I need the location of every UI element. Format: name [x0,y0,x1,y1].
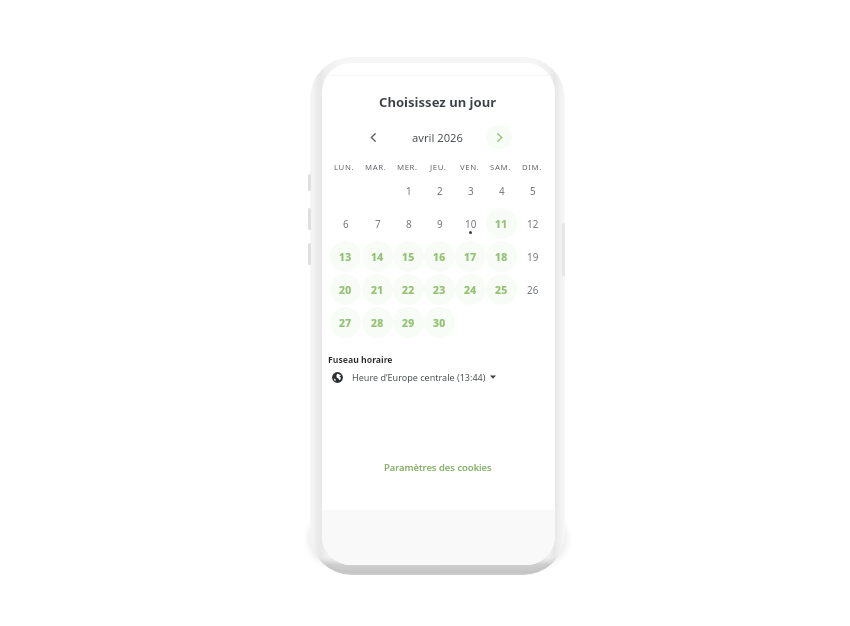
staticText: MAR. [365,162,387,173]
button[interactable]: 15 [393,241,424,272]
staticText: MER. [397,162,418,173]
staticText: 13 [339,250,352,264]
staticText: 24 [464,283,477,297]
button[interactable]: 22 [393,274,424,305]
button[interactable]: 8 [393,208,424,239]
staticText: JEU. [430,162,447,173]
button[interactable]: 9 [424,208,455,239]
button[interactable]: 13 [330,241,361,272]
button[interactable]: 5 [517,175,548,206]
button[interactable]: 25 [486,274,517,305]
staticText: Paramètres des cookies [384,461,492,474]
button[interactable]: 3 [455,175,486,206]
button[interactable]: 23 [424,274,455,305]
staticText: 23 [433,283,446,297]
staticText: 16 [433,250,446,264]
button[interactable]: 12 [517,208,548,239]
staticText: 10 [465,217,477,230]
staticText: 15 [402,250,415,264]
button[interactable]: 17 [455,241,486,272]
staticText: 19 [527,250,539,263]
button[interactable]: Mois suivant [486,125,512,149]
staticText: Fuseau horaire [328,354,393,366]
button[interactable]: 29 [393,307,424,338]
button[interactable]: 18 [486,241,517,272]
button[interactable]: 26 [517,274,548,305]
button[interactable]: Paramètres des cookies [382,459,494,476]
staticText: 30 [433,316,446,330]
staticText: 8 [406,217,412,230]
staticText: 20 [339,283,352,297]
button[interactable]: 10 [455,208,486,239]
staticText: 14 [371,250,384,264]
staticText: 1 [406,184,412,197]
staticText: 6 [343,217,349,230]
button[interactable]: Heure d’Europe centrale (13:44) [332,371,496,383]
button[interactable]: 21 [362,274,393,305]
staticText: 11 [495,217,508,231]
button[interactable]: Mois précédent [360,125,386,149]
staticText: 17 [464,250,477,264]
staticText: LUN. [334,162,355,173]
staticText: VEN. [460,162,480,173]
staticText: 26 [527,283,539,296]
staticText: 12 [527,217,539,230]
button[interactable]: 19 [517,241,548,272]
staticText: 29 [402,316,415,330]
button[interactable]: 4 [486,175,517,206]
button[interactable]: 1 [393,175,424,206]
button[interactable]: 2 [424,175,455,206]
staticText: 25 [495,283,508,297]
staticText: 9 [437,217,443,230]
button[interactable]: 16 [424,241,455,272]
staticText: 28 [371,316,384,330]
staticText: 18 [495,250,508,264]
staticText: 4 [499,184,505,197]
staticText: avril 2026 [412,130,463,145]
button[interactable]: 6 [330,208,361,239]
staticText: DIM. [522,162,542,173]
staticText: 22 [402,283,415,297]
button[interactable]: 14 [362,241,393,272]
staticText: Heure d’Europe centrale (13:44) [352,371,486,383]
staticText: Choisissez un jour [379,93,497,111]
staticText: 27 [339,316,352,330]
button[interactable]: 20 [330,274,361,305]
staticText: 3 [468,184,474,197]
button[interactable]: 7 [362,208,393,239]
button[interactable]: 24 [455,274,486,305]
staticText: 5 [530,184,536,197]
button[interactable]: 11 [486,208,517,239]
staticText: 2 [437,184,443,197]
staticText: 21 [371,283,384,297]
button[interactable]: 30 [424,307,455,338]
staticText: 7 [375,217,381,230]
button[interactable]: 28 [362,307,393,338]
staticText: SAM. [490,162,511,173]
button[interactable]: 27 [330,307,361,338]
